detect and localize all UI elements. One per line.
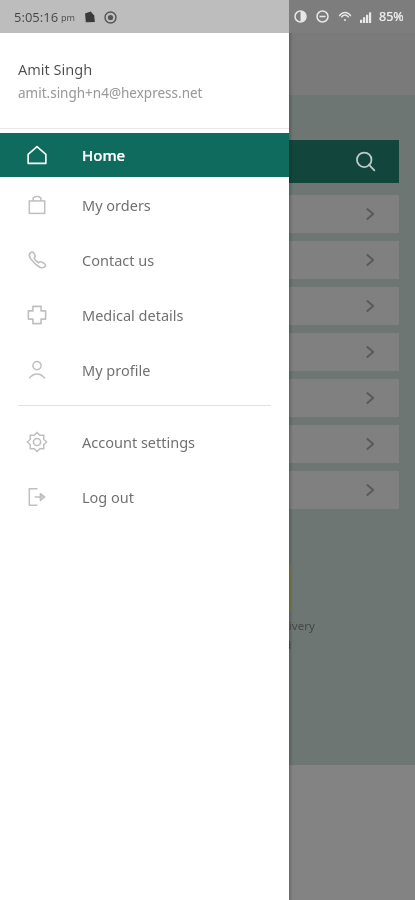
button[interactable] <box>16 241 399 279</box>
staticText: 5:05:16 <box>14 8 59 26</box>
button[interactable]: My orders <box>0 177 289 232</box>
button[interactable]: My profile <box>0 342 289 397</box>
button[interactable] <box>16 333 399 371</box>
staticText: Next-day delivery <box>221 618 315 634</box>
staticText: 85% <box>379 8 404 25</box>
staticText: pm <box>61 11 75 23</box>
staticText: included <box>245 637 292 653</box>
other: Search <box>355 151 377 173</box>
button[interactable]: Account settings <box>0 414 289 469</box>
button[interactable]: Home <box>0 133 289 177</box>
button[interactable] <box>16 425 399 463</box>
button[interactable]: Search <box>16 140 399 183</box>
button[interactable] <box>16 379 399 417</box>
button[interactable]: Amit Singh <box>0 33 289 128</box>
staticText: Log out <box>82 487 135 507</box>
staticText: Medical details <box>82 305 184 325</box>
staticText: Amit Singh <box>18 59 93 79</box>
staticText: Account settings <box>82 432 196 452</box>
button[interactable]: Log out <box>0 469 289 524</box>
button[interactable] <box>16 287 399 325</box>
button[interactable]: Contact us <box>0 232 289 287</box>
button[interactable]: Medical details <box>0 287 289 342</box>
staticText: amit.singh+n4@hexpress.net <box>18 84 203 102</box>
staticText: My profile <box>82 360 151 380</box>
staticText: My orders <box>82 195 151 215</box>
button[interactable] <box>16 195 399 233</box>
staticText: Home <box>82 145 126 165</box>
button[interactable] <box>16 471 399 509</box>
staticText: Contact us <box>82 250 155 270</box>
